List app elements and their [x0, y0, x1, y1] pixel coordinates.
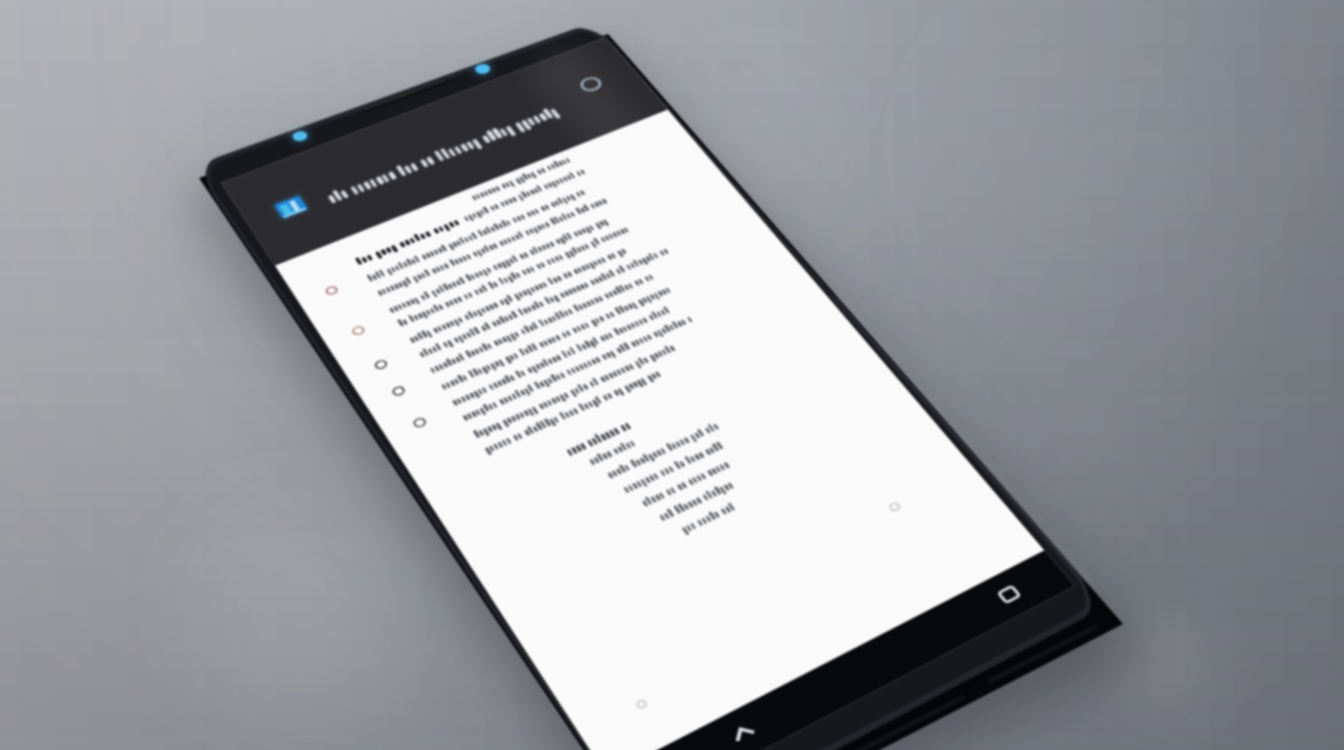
- other: Phone displaying a document: [0, 0, 1344, 750]
